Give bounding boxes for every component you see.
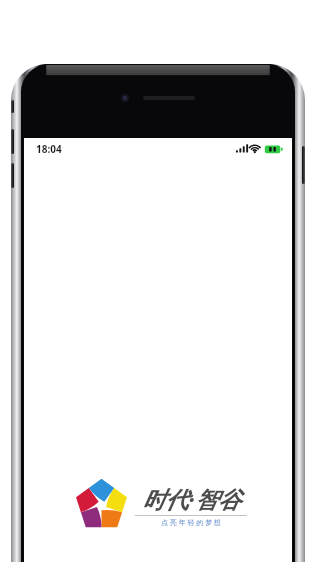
other: Signal, Wi-Fi and battery status	[236, 143, 282, 155]
staticText: 时代·智谷	[142, 483, 241, 514]
staticText: 18:04	[36, 142, 62, 156]
other: 时代智谷 logo	[73, 477, 130, 534]
staticText: 点 亮 年 轻 的 梦 想	[161, 518, 221, 528]
button[interactable]: 时代智谷 logo	[73, 477, 247, 534]
